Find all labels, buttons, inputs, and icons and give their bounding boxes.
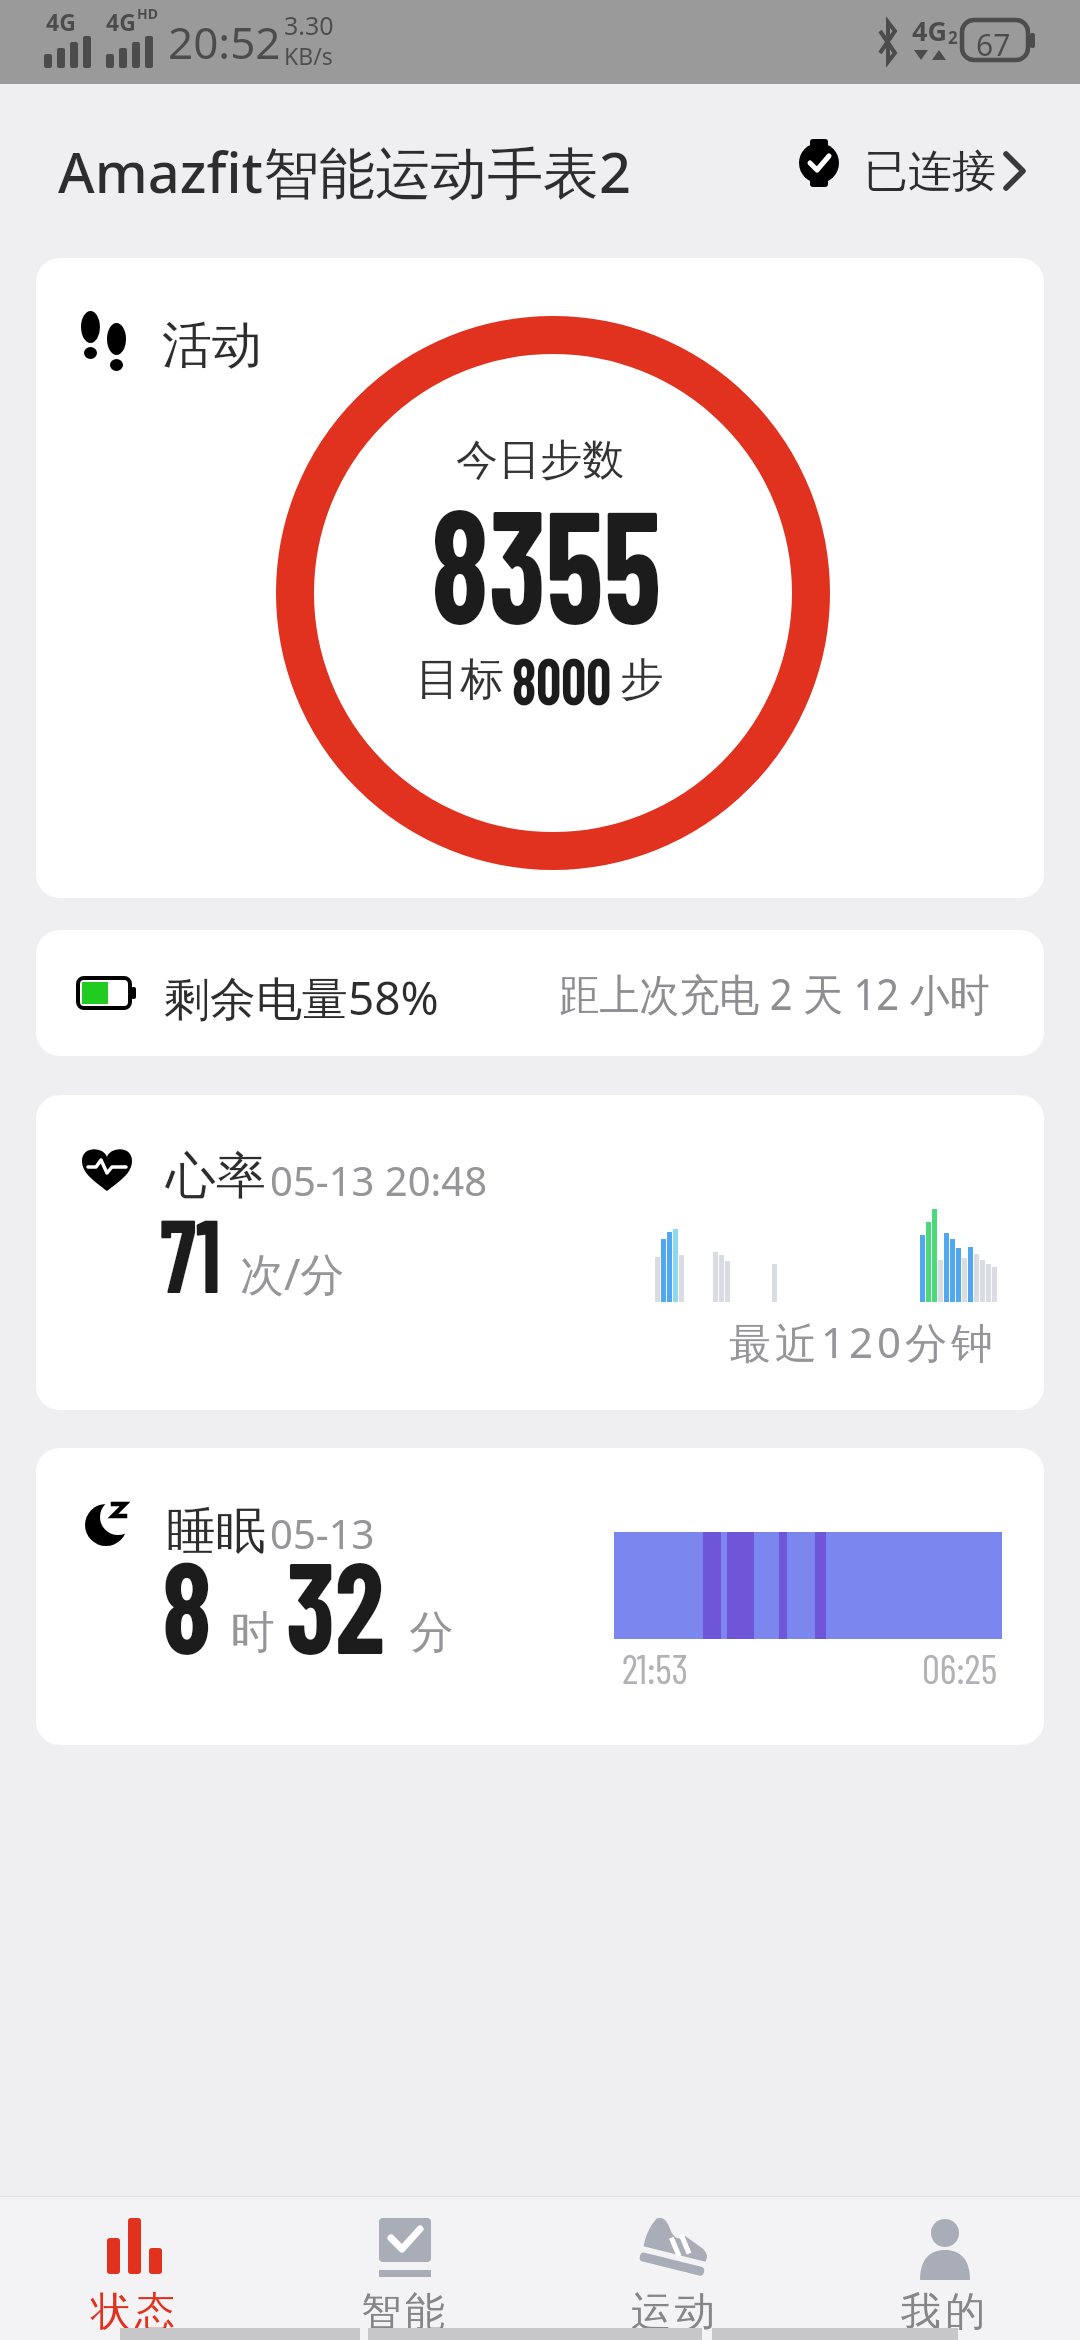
staticText: 智能 (305, 2286, 505, 2336)
staticText: 运动 (575, 2286, 775, 2336)
staticText: 21:53 (622, 1644, 689, 1692)
staticText: 32 (286, 1526, 385, 1680)
button[interactable]: 我的 (845, 2196, 1045, 2328)
staticText: 已连接 (864, 144, 996, 199)
staticText: 剩余电量58% (164, 966, 439, 1029)
staticText: Amazfit智能运动手表2 (58, 133, 631, 209)
staticText: 时 (219, 1600, 286, 1660)
staticText: 心率 (166, 1145, 266, 1208)
button[interactable]: 已连接 (790, 84, 1050, 258)
staticText: 距上次充电 2 天 12 小时 (559, 964, 990, 1023)
staticText: 06:25 (922, 1644, 998, 1692)
button[interactable]: 剩余电量58% (36, 930, 1044, 1056)
staticText: 今日步数 (36, 434, 1044, 487)
staticText: 8355 (128, 466, 964, 656)
staticText: 8 (162, 1526, 212, 1680)
staticText: 次/分 (240, 1243, 345, 1303)
staticText: 步 (620, 652, 664, 707)
staticText: 4G (912, 12, 947, 49)
staticText: 67 (976, 24, 1011, 65)
staticText: 活动 (162, 314, 262, 377)
staticText: 4G (106, 6, 136, 37)
button[interactable]: 活动 (36, 258, 1044, 898)
staticText: 目标 (416, 652, 504, 707)
button[interactable]: 运动 (575, 2196, 775, 2328)
button[interactable]: 心率 (36, 1095, 1044, 1410)
staticText: 05-13 (270, 1506, 375, 1560)
button[interactable]: 睡眠 (36, 1448, 1044, 1745)
staticText: 最近120分钟 (668, 1313, 1044, 1370)
staticText: 2 (948, 26, 958, 49)
staticText: 分 (398, 1600, 454, 1660)
staticText: HD (137, 4, 158, 23)
staticText: 20:52 (168, 12, 281, 72)
staticText: 4G (46, 6, 76, 37)
staticText: 3.30 (284, 8, 334, 42)
staticText: 8000 (512, 641, 612, 718)
staticText: 71 (160, 1189, 221, 1314)
staticText: 睡眠 (166, 1500, 266, 1563)
staticText: 05-13 20:48 (270, 1153, 488, 1207)
button[interactable]: 智能 (305, 2196, 505, 2328)
staticText: KB/s (284, 40, 333, 71)
staticText: 我的 (845, 2286, 1045, 2336)
button[interactable]: 状态 (35, 2196, 235, 2328)
staticText: 状态 (35, 2286, 235, 2336)
